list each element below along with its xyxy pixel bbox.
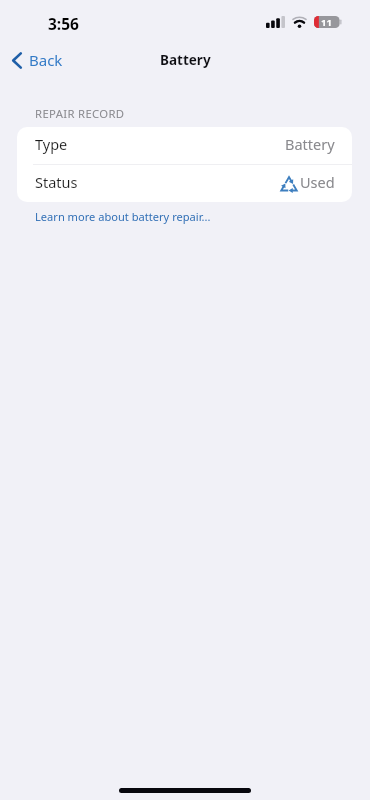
staticText: REPAIR RECORD — [35, 106, 125, 121]
other: Recycled — [280, 177, 298, 195]
staticText: Type — [35, 134, 68, 154]
staticText: Battery — [160, 51, 211, 69]
button[interactable]: Learn more about battery repair... — [35, 209, 211, 224]
other: Battery 11 percent — [314, 16, 342, 28]
staticText: Used — [300, 172, 335, 192]
button[interactable]: Status — [17, 165, 352, 202]
button[interactable]: Back — [4, 44, 71, 76]
staticText: Status — [35, 172, 78, 192]
staticText: 11 — [321, 16, 332, 28]
staticText: 3:56 — [48, 13, 79, 34]
staticText: Battery — [285, 134, 335, 154]
staticText: Back — [29, 50, 63, 70]
button[interactable]: Type — [17, 127, 352, 164]
